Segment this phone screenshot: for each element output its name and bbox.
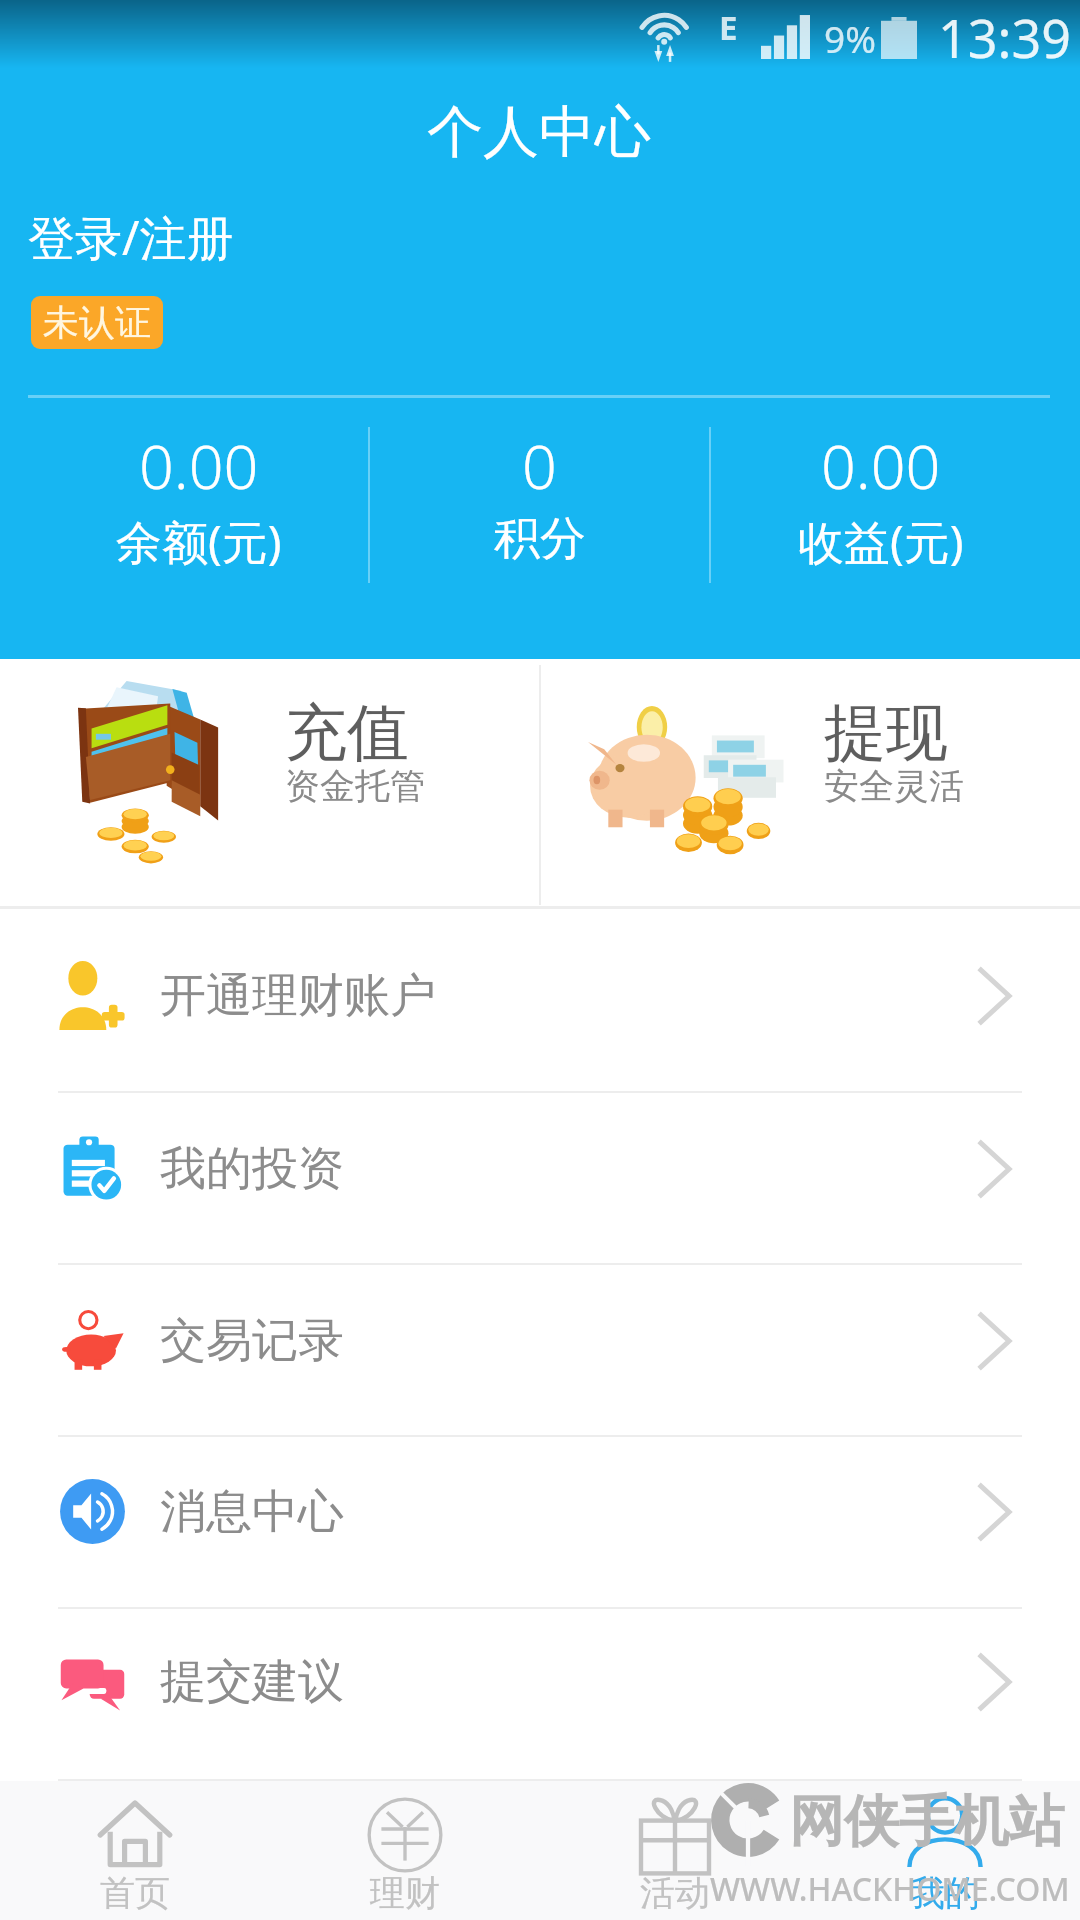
button[interactable]: 活动	[540, 1781, 810, 1920]
button[interactable]: 未认证	[31, 296, 163, 349]
button[interactable]: 开通理财账户	[0, 909, 1080, 1093]
button[interactable]: 我的投资	[0, 1093, 1080, 1265]
staticText: 9%	[824, 13, 876, 63]
button[interactable]: 首页	[0, 1781, 270, 1920]
staticText: 余额(元)	[116, 510, 282, 573]
staticText: 0	[522, 424, 557, 507]
staticText: 首页	[100, 1871, 170, 1915]
staticText: 资金托管	[285, 764, 425, 808]
staticText: 收益(元)	[798, 510, 964, 573]
staticText: 提交建议	[160, 1653, 344, 1711]
staticText: 0.00	[139, 424, 259, 507]
button[interactable]: 我的	[810, 1781, 1080, 1920]
staticText: 登录/注册	[28, 205, 234, 269]
button[interactable]: 充值	[0, 659, 540, 906]
button[interactable]: 0.00	[30, 427, 368, 583]
staticText: 开通理财账户	[160, 967, 436, 1025]
staticText: 充值	[285, 694, 409, 772]
staticText: 我的	[910, 1871, 980, 1915]
button[interactable]: 0.00	[711, 427, 1050, 583]
staticText: 交易记录	[160, 1312, 344, 1370]
other: 充值	[78, 681, 221, 860]
staticText: 13:39	[938, 2, 1071, 70]
button[interactable]: 理财	[270, 1781, 540, 1920]
staticText: 网侠手机站	[789, 1787, 1064, 1856]
staticText: 0.00	[821, 424, 941, 507]
staticText: 个人中心	[427, 97, 651, 168]
button[interactable]: 交易记录	[0, 1265, 1080, 1437]
staticText: 理财	[370, 1871, 440, 1915]
staticText: 安全灵活	[824, 764, 964, 808]
staticText: WWW.HACKHOME.COM	[710, 1867, 1070, 1911]
button[interactable]: 提现	[540, 659, 1080, 906]
button[interactable]: 提交建议	[0, 1609, 1080, 1781]
staticText: 提现	[824, 694, 948, 772]
staticText: 未认证	[43, 300, 151, 345]
other: 提现	[587, 706, 790, 853]
staticText: 消息中心	[160, 1483, 344, 1541]
staticText: E	[719, 5, 738, 50]
staticText: 积分	[494, 510, 586, 568]
button[interactable]: 消息中心	[0, 1437, 1080, 1609]
staticText: 活动	[640, 1871, 710, 1915]
staticText: 我的投资	[160, 1140, 344, 1198]
button[interactable]: 0	[370, 427, 709, 583]
